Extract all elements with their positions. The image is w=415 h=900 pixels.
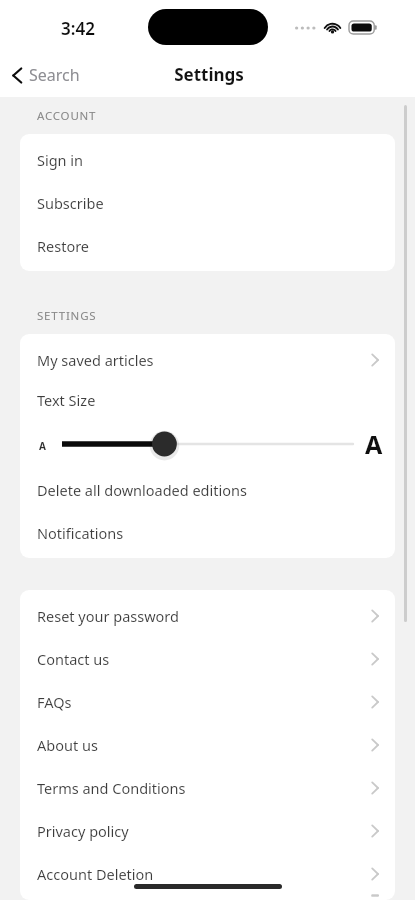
staticText: Contact us xyxy=(37,649,110,669)
staticText: My saved articles xyxy=(37,350,154,370)
staticText: Text Size xyxy=(37,390,96,410)
button[interactable]: My saved articles xyxy=(20,338,395,381)
staticText: Search xyxy=(29,64,80,86)
staticText: Delete all downloaded editions xyxy=(37,480,247,500)
staticText: Restore xyxy=(37,236,90,256)
staticText: A xyxy=(365,427,383,461)
button[interactable]: FAQs xyxy=(20,680,395,723)
button[interactable]: Search xyxy=(0,57,92,93)
button[interactable]: Restore xyxy=(20,224,395,267)
button[interactable]: Onboarding xyxy=(20,895,395,896)
button[interactable]: Reset your password xyxy=(20,594,395,637)
button[interactable]: Account Deletion xyxy=(20,852,395,895)
button[interactable]: Privacy policy xyxy=(20,809,395,852)
staticText: Terms and Conditions xyxy=(37,778,186,798)
button[interactable]: Terms and Conditions xyxy=(20,766,395,809)
staticText: Account Deletion xyxy=(37,864,154,884)
button[interactable]: About us xyxy=(20,723,395,766)
staticText: Subscribe xyxy=(37,193,104,213)
button[interactable]: Subscribe xyxy=(20,181,395,224)
staticText: Reset your password xyxy=(37,606,179,626)
staticText: Settings xyxy=(174,63,244,86)
staticText: A xyxy=(39,439,46,453)
staticText: Sign in xyxy=(37,150,84,170)
staticText: About us xyxy=(37,735,98,755)
staticText: 3:42 xyxy=(61,17,95,40)
staticText: SETTINGS xyxy=(37,308,97,324)
button[interactable]: Sign in xyxy=(20,138,395,181)
button[interactable]: Delete all downloaded editions xyxy=(20,468,395,511)
button[interactable]: Text size slider xyxy=(20,419,395,468)
button[interactable]: Contact us xyxy=(20,637,395,680)
staticText: Privacy policy xyxy=(37,821,129,841)
staticText: FAQs xyxy=(37,692,72,712)
staticText: ACCOUNT xyxy=(37,108,97,124)
staticText: Notifications xyxy=(37,523,124,543)
button[interactable]: Notifications xyxy=(20,511,395,554)
